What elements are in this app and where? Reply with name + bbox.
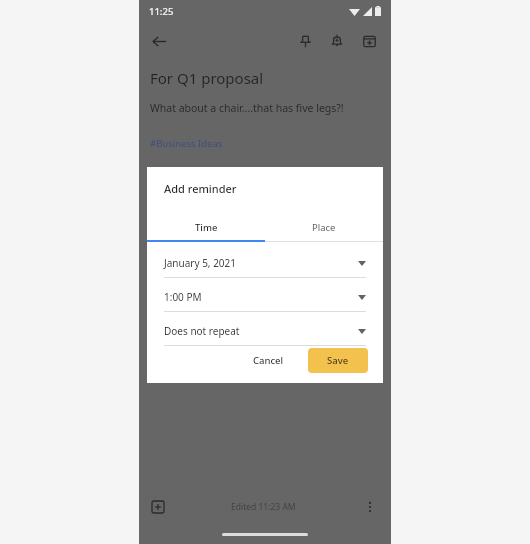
button[interactable]: Archive [355, 27, 383, 55]
staticText: Save [327, 354, 349, 367]
button[interactable]: Does not repeat [164, 324, 366, 346]
button[interactable]: Pin [291, 27, 319, 55]
button[interactable]: Back [145, 27, 173, 55]
button[interactable]: Save [308, 348, 368, 373]
staticText: Cancel [253, 354, 284, 367]
staticText: January 5, 2021 [164, 256, 237, 270]
button[interactable]: January 5, 2021 [164, 256, 366, 278]
staticText: Does not repeat [164, 324, 240, 338]
staticText: Add reminder [164, 181, 237, 196]
button[interactable]: Cancel [241, 347, 296, 374]
staticText: 1:00 PM [164, 290, 202, 304]
button[interactable]: Add [145, 494, 171, 520]
button[interactable]: More options [357, 494, 383, 520]
staticText: Time [195, 221, 218, 234]
button[interactable]: Time [147, 214, 265, 240]
button[interactable]: Place [265, 214, 383, 240]
button[interactable]: Add reminder [323, 27, 351, 55]
staticText: Place [312, 221, 336, 234]
staticText: #Business Ideas [150, 137, 223, 150]
staticText: What about a chair....that has five legs… [150, 101, 344, 115]
staticText: For Q1 proposal [150, 68, 264, 88]
staticText: 11:25 [149, 5, 174, 18]
staticText: Edited 11:23 AM [231, 501, 296, 513]
button[interactable]: 1:00 PM [164, 290, 366, 312]
